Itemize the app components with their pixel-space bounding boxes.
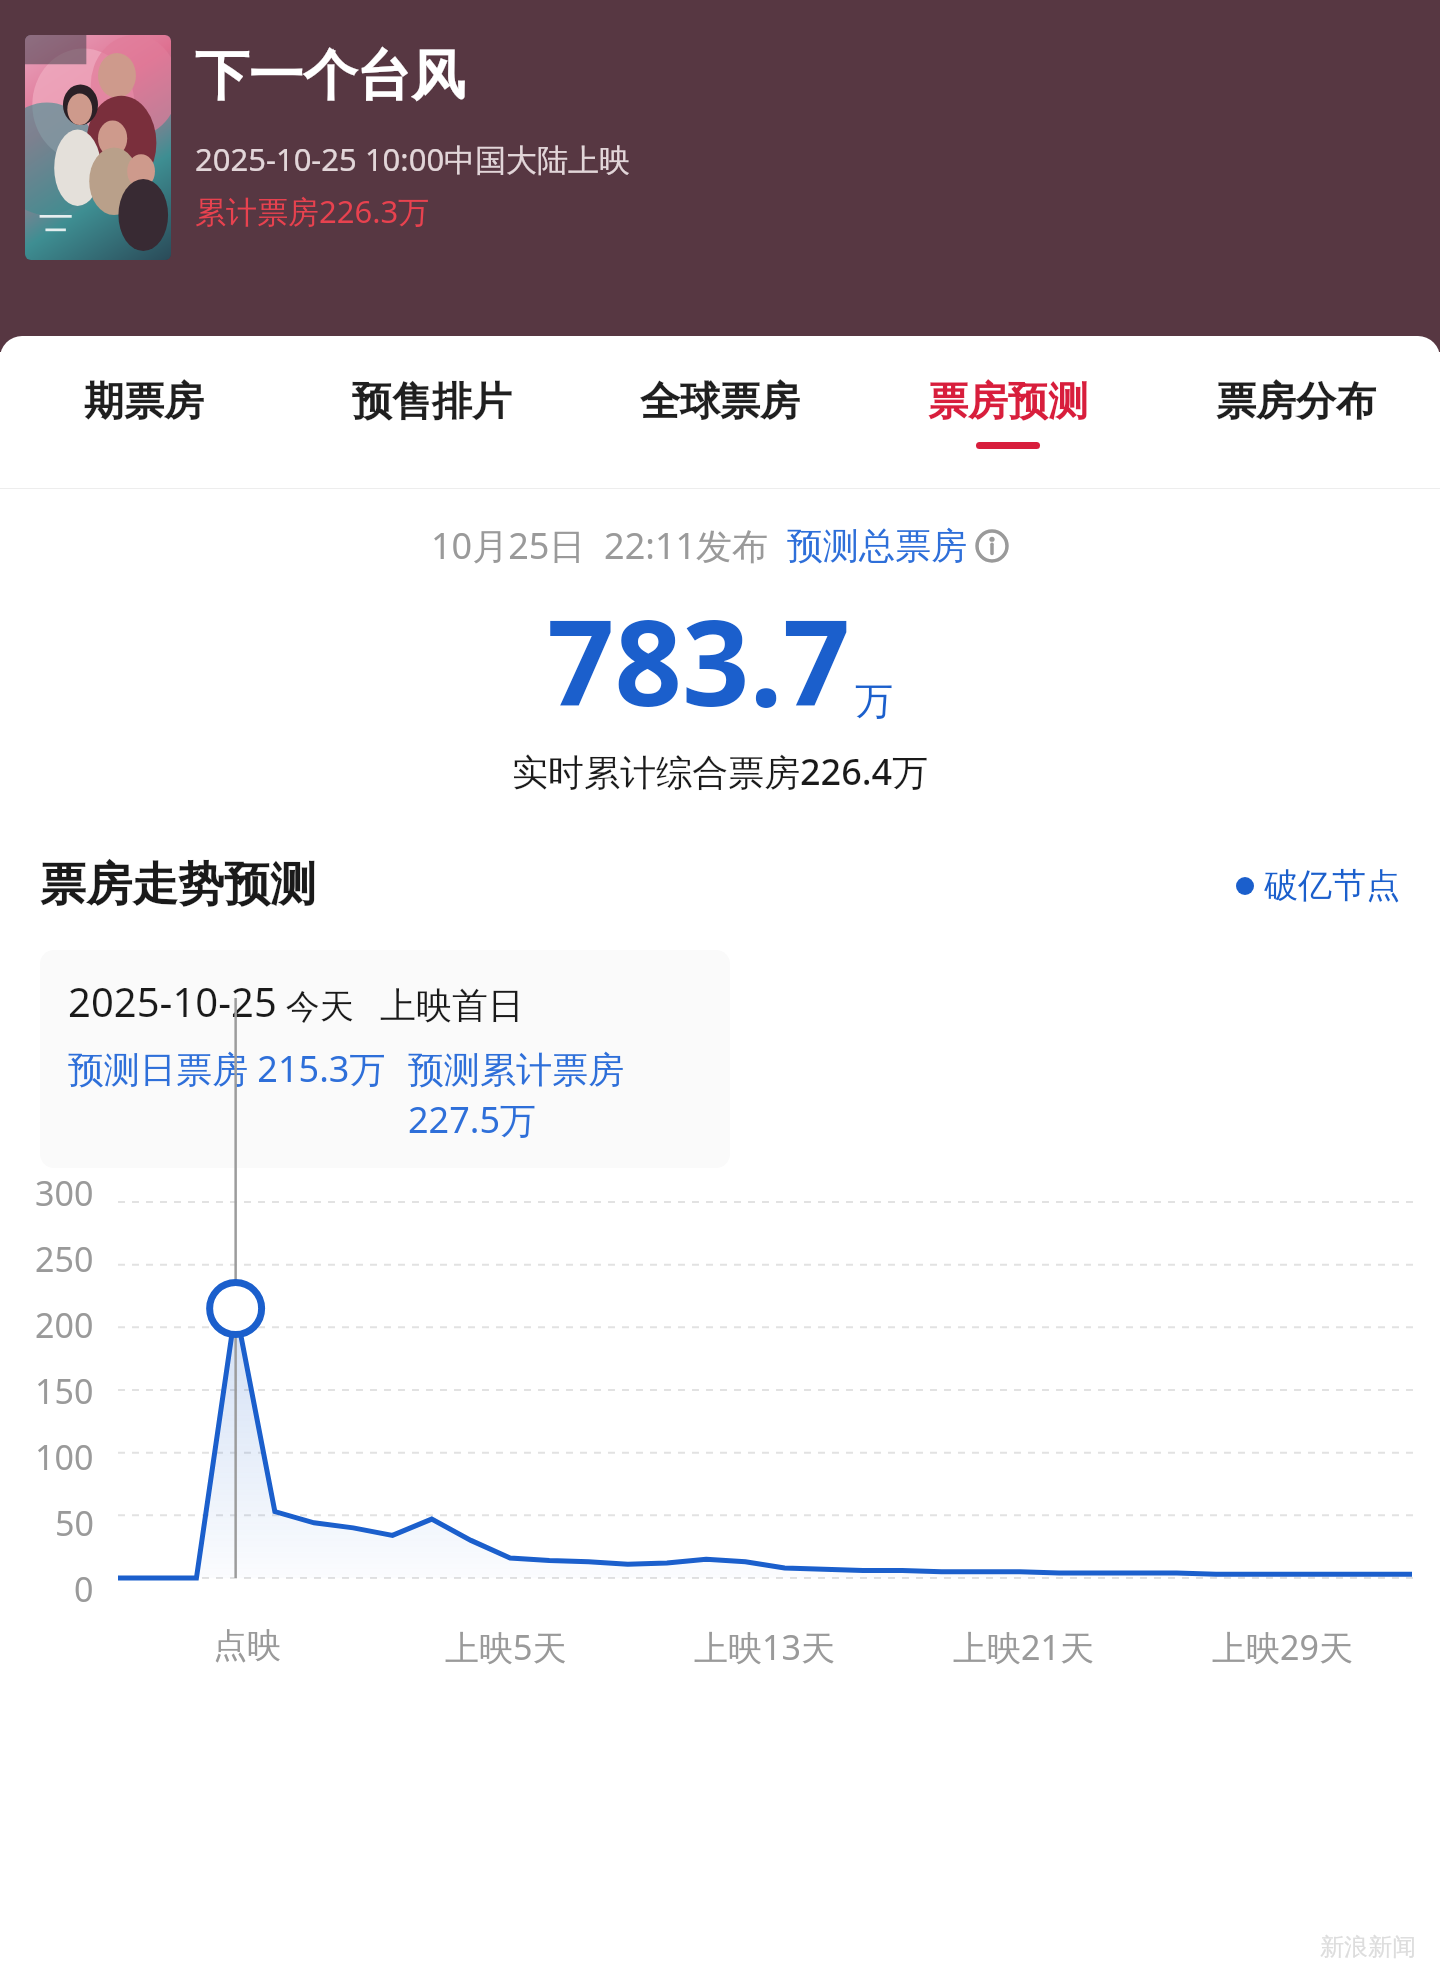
staticText: 2025-10-25 10:00中国大陆上映 bbox=[195, 138, 631, 180]
staticText: 新浪新闻 bbox=[1320, 1932, 1416, 1962]
staticText: 2025-10-25 bbox=[68, 974, 277, 1028]
staticText: 150 bbox=[35, 1368, 94, 1414]
staticText: 上映21天 bbox=[953, 1624, 1094, 1670]
staticText: 点映 bbox=[213, 1624, 281, 1667]
staticText: 300 bbox=[35, 1170, 94, 1216]
button[interactable]: 预测总票房 bbox=[787, 523, 1009, 568]
staticText: 250 bbox=[35, 1236, 94, 1282]
staticText: 实时累计综合票房226.4万 bbox=[512, 747, 929, 796]
staticText: 预测日票房 215.3万 bbox=[68, 1044, 386, 1093]
staticText: 预测总票房 bbox=[787, 523, 967, 568]
button[interactable]: 票房分布 bbox=[1152, 336, 1440, 488]
staticText: 10月25日 22:11发布 bbox=[431, 521, 787, 570]
staticText: 200 bbox=[35, 1302, 94, 1348]
staticText: 预测累计票房 227.5万 bbox=[408, 1044, 702, 1144]
staticText: 上映29天 bbox=[1212, 1624, 1353, 1670]
staticText: 下一个台风 bbox=[195, 42, 465, 110]
staticText: 上映首日 bbox=[380, 983, 524, 1028]
button[interactable]: 全球票房 bbox=[576, 336, 864, 488]
staticText: 预售排片 bbox=[352, 376, 512, 426]
staticText: 票房预测 bbox=[928, 376, 1088, 426]
staticText: 累计票房226.3万 bbox=[195, 190, 430, 232]
staticText: 0 bbox=[74, 1566, 94, 1612]
button[interactable]: 票房预测 bbox=[864, 336, 1152, 488]
staticText: 全球票房 bbox=[640, 376, 800, 426]
button[interactable]: 期票房 bbox=[0, 336, 288, 488]
staticText: 期票房 bbox=[84, 376, 204, 426]
staticText: 100 bbox=[35, 1434, 94, 1480]
staticText: 今天 bbox=[277, 982, 354, 1028]
button[interactable]: 预售排片 bbox=[288, 336, 576, 488]
staticText: 万 bbox=[855, 677, 893, 725]
button[interactable]: 破亿节点 bbox=[1236, 864, 1400, 907]
staticText: 50 bbox=[55, 1500, 94, 1546]
staticText: 破亿节点 bbox=[1264, 864, 1400, 907]
staticText: 票房分布 bbox=[1216, 376, 1376, 426]
other: 说明 bbox=[975, 529, 1009, 563]
staticText: 上映13天 bbox=[694, 1624, 835, 1670]
staticText: 783.7 bbox=[547, 580, 851, 741]
staticText: 上映5天 bbox=[445, 1624, 567, 1670]
staticText: 票房走势预测 bbox=[40, 856, 316, 914]
